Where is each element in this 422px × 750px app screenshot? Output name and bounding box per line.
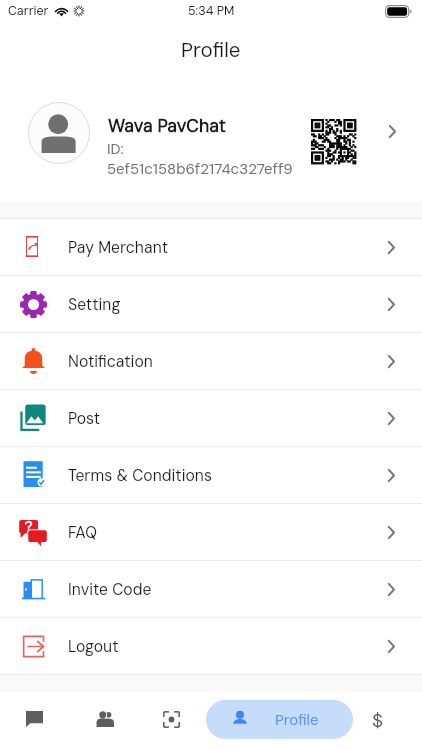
- button[interactable]: Chat: [12, 692, 57, 750]
- button[interactable]: Profile: [206, 700, 353, 739]
- button[interactable]: Contacts: [82, 692, 127, 750]
- staticText: Profile: [181, 37, 241, 64]
- button[interactable]: Scan: [149, 692, 194, 750]
- button[interactable]: Setting: [0, 276, 422, 332]
- staticText: Logout: [68, 636, 119, 656]
- staticText: Profile: [275, 710, 319, 730]
- staticText: Pay Merchant: [68, 237, 169, 257]
- staticText: FAQ: [68, 522, 97, 542]
- staticText: ID: 5ef51c158b6f2174c327eff9: [107, 139, 293, 179]
- button[interactable]: Post: [0, 390, 422, 446]
- button[interactable]: Wallet: [358, 692, 398, 750]
- staticText: Notification: [68, 351, 153, 371]
- staticText: $: [372, 708, 384, 733]
- button[interactable]: Pay Merchant: [0, 219, 422, 275]
- staticText: Invite Code: [68, 579, 152, 599]
- button[interactable]: FAQ: [0, 504, 422, 560]
- button[interactable]: Terms & Conditions: [0, 447, 422, 503]
- button[interactable]: Notification: [0, 333, 422, 389]
- button[interactable]: Wava PavChat: [0, 78, 422, 201]
- button[interactable]: Invite Code: [0, 561, 422, 617]
- staticText: Post: [68, 408, 101, 428]
- staticText: Carrier: [8, 3, 49, 19]
- staticText: Wava PavChat: [108, 114, 226, 137]
- staticText: Setting: [68, 294, 121, 314]
- staticText: 5:34 PM: [188, 3, 235, 19]
- button[interactable]: Logout: [0, 618, 422, 674]
- staticText: Terms & Conditions: [68, 465, 212, 485]
